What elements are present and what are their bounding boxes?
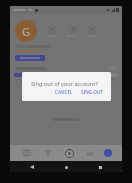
button[interactable]: History xyxy=(65,25,79,38)
button[interactable]: Home xyxy=(20,146,34,160)
button[interactable]: Account xyxy=(104,149,112,157)
button[interactable]: Profile photo xyxy=(15,20,37,42)
staticText: SING OUT xyxy=(81,89,103,95)
button[interactable]: Trophy xyxy=(41,146,55,160)
button[interactable]: Recent apps xyxy=(96,163,104,171)
button[interactable]: Award xyxy=(45,25,59,38)
button[interactable]: Settings xyxy=(85,25,99,38)
button[interactable]: Back xyxy=(28,163,36,171)
staticText: CANCEL xyxy=(55,89,73,95)
button[interactable]: Scan xyxy=(63,147,75,159)
button[interactable]: CANCEL xyxy=(53,88,75,96)
button[interactable]: Stats xyxy=(83,146,97,160)
button[interactable] xyxy=(15,55,45,61)
staticText: G xyxy=(22,24,31,39)
staticText: Sing out of your account? xyxy=(31,80,98,88)
button[interactable]: Home xyxy=(62,163,70,171)
button[interactable]: SING OUT xyxy=(79,88,105,96)
